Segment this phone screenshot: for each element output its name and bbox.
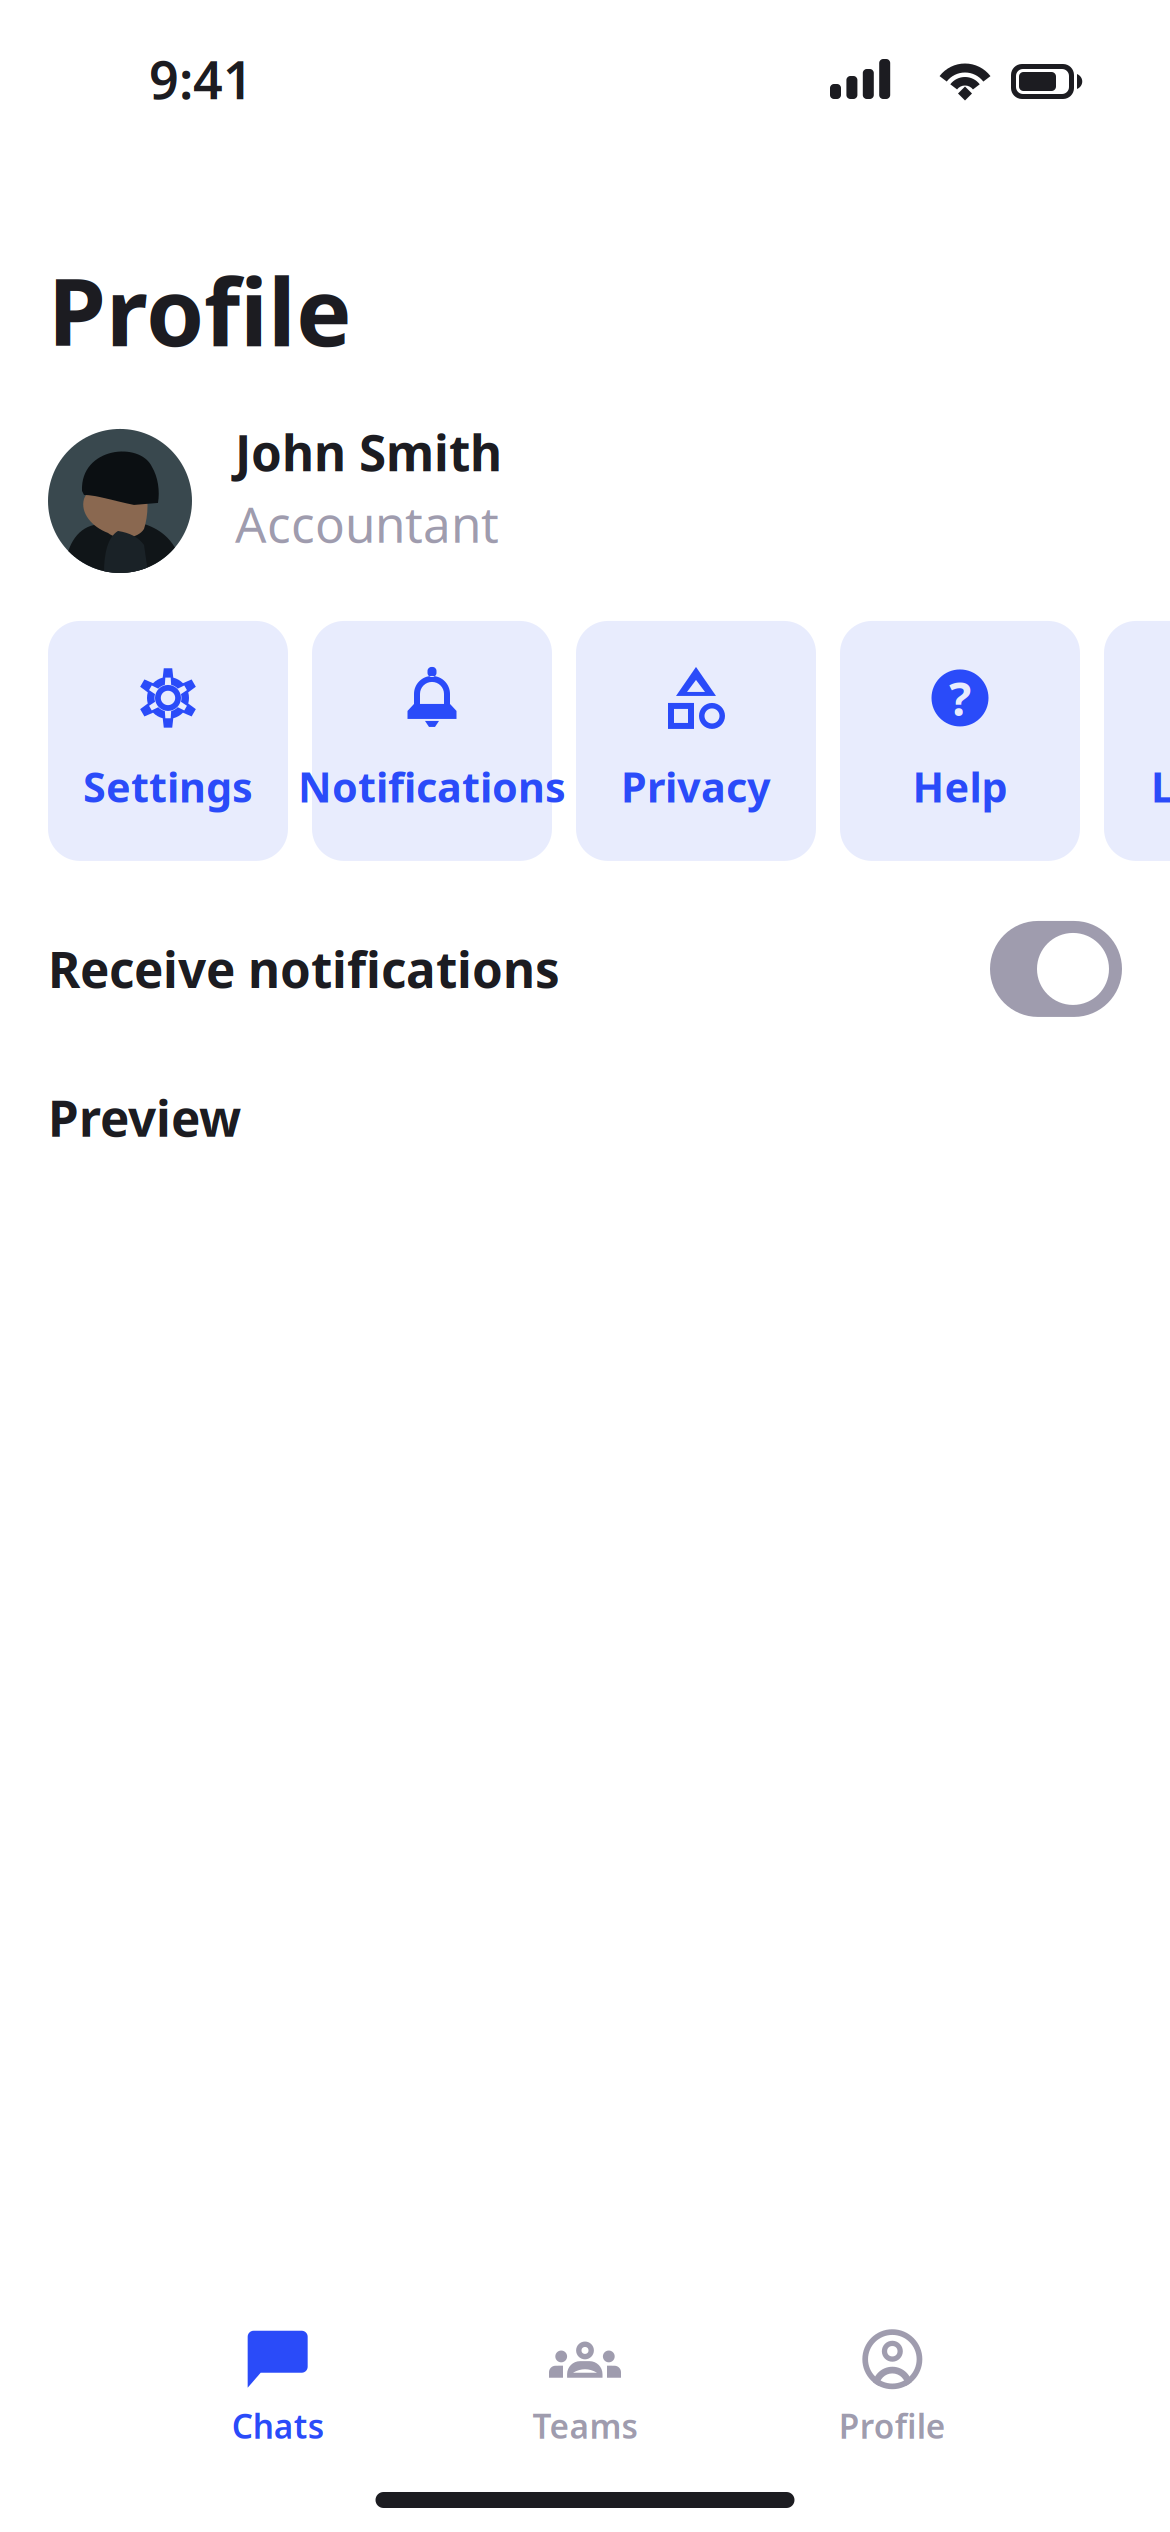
button[interactable]: Teams bbox=[431, 2330, 739, 2448]
button[interactable]: Receive notifications bbox=[990, 921, 1122, 1017]
staticText: Notifications bbox=[298, 759, 566, 814]
staticText: Help bbox=[912, 759, 1007, 814]
button[interactable]: Logout bbox=[1104, 621, 1170, 861]
button[interactable]: Notifications bbox=[312, 621, 552, 861]
staticText: Chats bbox=[232, 2404, 324, 2448]
staticText: ? bbox=[949, 667, 971, 729]
staticText: Accountant bbox=[235, 491, 499, 556]
button[interactable]: Privacy bbox=[576, 621, 816, 861]
staticText: Profile bbox=[48, 248, 352, 372]
staticText: Privacy bbox=[621, 759, 771, 814]
button[interactable]: Chats bbox=[124, 2330, 431, 2448]
button[interactable]: John Smith bbox=[0, 429, 1170, 573]
staticText: Teams bbox=[532, 2404, 637, 2448]
button[interactable]: Profile bbox=[739, 2330, 1046, 2448]
staticText: 9:41 bbox=[149, 44, 253, 114]
staticText: John Smith bbox=[235, 419, 502, 485]
staticText: Settings bbox=[83, 759, 253, 814]
staticText: Receive notifications bbox=[48, 936, 560, 1002]
staticText: Logout bbox=[1151, 759, 1170, 814]
button[interactable]: ? bbox=[840, 621, 1080, 861]
button[interactable]: Settings bbox=[48, 621, 288, 861]
staticText: Preview bbox=[48, 1085, 241, 1150]
staticText: Profile bbox=[839, 2404, 946, 2448]
